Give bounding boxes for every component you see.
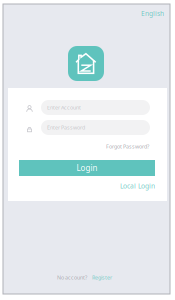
staticText: Login [76,163,97,173]
button[interactable]: Register [87,274,112,281]
button[interactable]: English [124,9,164,18]
button[interactable]: Forgot Password? [19,142,149,151]
staticText: Enter Account [47,104,81,111]
staticText: No account? [57,274,87,281]
button[interactable]: Local Login [19,181,155,190]
staticText: English [141,9,164,18]
staticText: Enter Password [47,124,85,131]
staticText: Register [92,274,112,281]
staticText: Local Login [120,182,155,190]
button[interactable]: Login [19,160,155,176]
staticText: Forgot Password? [106,143,149,150]
